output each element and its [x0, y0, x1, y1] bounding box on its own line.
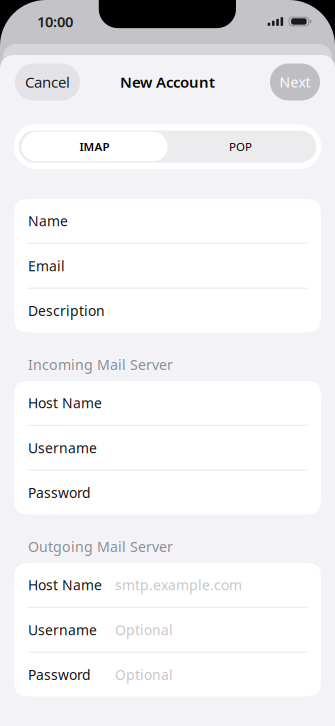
staticText: Host Name	[28, 575, 102, 594]
button[interactable]: Cancel	[15, 63, 80, 100]
button[interactable]: Username	[14, 608, 321, 652]
staticText: Password	[28, 483, 91, 502]
staticText: Email	[28, 256, 65, 275]
staticText: Name	[28, 211, 68, 230]
staticText: Optional	[115, 620, 173, 639]
staticText: Host Name	[28, 393, 102, 412]
staticText: New Account	[120, 72, 215, 92]
button[interactable]: Password	[14, 471, 321, 514]
button[interactable]: POP	[167, 132, 313, 161]
button[interactable]: Password	[14, 653, 321, 696]
staticText: IMAP	[80, 139, 110, 154]
button[interactable]: Host Name	[14, 563, 321, 607]
staticText: POP	[229, 139, 252, 154]
staticText: Description	[28, 301, 105, 320]
staticText: Password	[28, 665, 91, 684]
staticText: Next	[279, 73, 310, 91]
staticText: Outgoing Mail Server	[28, 537, 173, 556]
staticText: smtp.example.com	[115, 575, 242, 594]
staticText: Optional	[115, 665, 173, 684]
button[interactable]: Name	[14, 199, 321, 243]
staticText: Cancel	[25, 72, 70, 92]
staticText: 10:00	[37, 11, 73, 31]
button[interactable]: Description	[14, 289, 321, 332]
button[interactable]: Username	[14, 426, 321, 470]
button[interactable]: Email	[14, 244, 321, 288]
staticText: Username	[28, 620, 97, 639]
button[interactable]: IMAP	[22, 132, 167, 161]
button[interactable]: Host Name	[14, 381, 321, 425]
staticText: Username	[28, 438, 97, 457]
staticText: Incoming Mail Server	[28, 355, 173, 374]
button[interactable]: Next	[270, 63, 320, 100]
